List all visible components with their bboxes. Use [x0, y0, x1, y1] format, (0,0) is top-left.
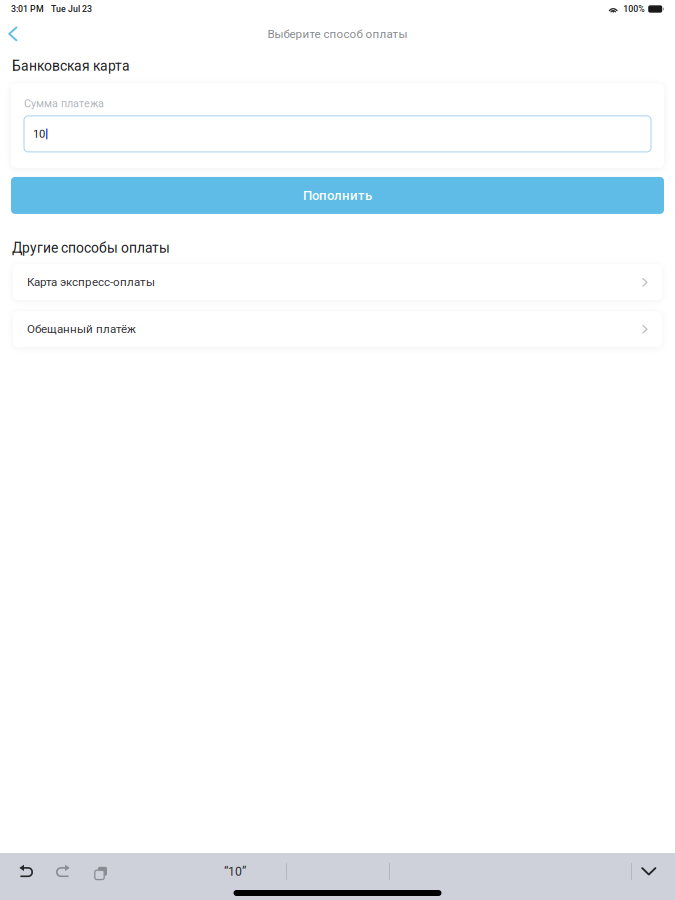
staticText: Другие способы оплаты: [12, 240, 170, 256]
staticText: Tue Jul 23: [51, 4, 92, 14]
button[interactable]: Обещанный платёж: [13, 311, 662, 347]
staticText: Сумма платежа: [24, 97, 104, 110]
staticText: Обещанный платёж: [27, 322, 136, 336]
button[interactable]: Redo: [50, 864, 76, 878]
staticText: Банковская карта: [12, 58, 130, 74]
button[interactable]: Paste: [87, 865, 112, 878]
staticText: 100%: [623, 4, 644, 14]
button[interactable]: Undo: [13, 864, 39, 878]
button[interactable]: Пополнить: [11, 177, 664, 214]
staticText: Пополнить: [303, 188, 372, 203]
button[interactable]: Hide keyboard: [632, 866, 666, 876]
staticText: “10”: [224, 864, 246, 879]
staticText: 10: [33, 127, 45, 140]
staticText: Карта экспресс-оплаты: [27, 275, 155, 289]
staticText: Выберите способ оплаты: [267, 27, 407, 41]
button[interactable]: Карта экспресс-оплаты: [13, 264, 662, 300]
button[interactable]: Back: [0, 20, 29, 47]
button[interactable]: “10”: [224, 864, 286, 879]
staticText: 3:01 PM: [11, 4, 44, 14]
